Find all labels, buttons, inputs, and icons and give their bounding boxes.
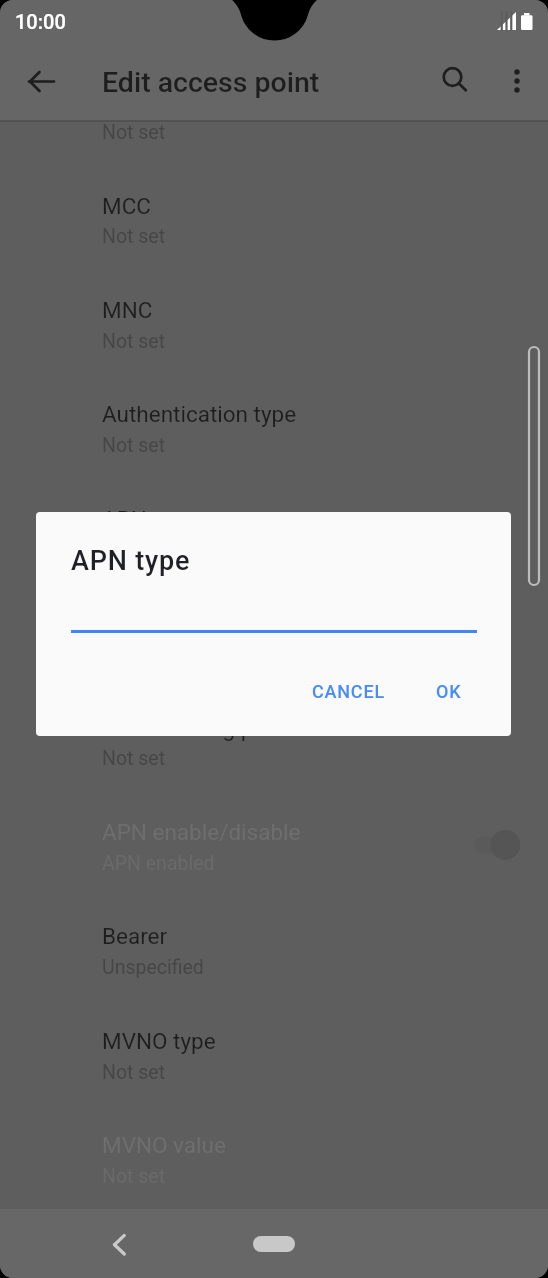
staticText: APN enabled	[102, 852, 215, 875]
button[interactable]: APN enable/disable	[102, 819, 301, 845]
staticText: Unspecified	[102, 956, 204, 979]
button[interactable]: APN protocol	[102, 610, 236, 636]
staticText: OK	[436, 681, 462, 702]
button[interactable]: APN type	[71, 545, 191, 577]
button[interactable]: More options	[493, 57, 541, 105]
staticText: Not set	[102, 330, 166, 353]
button[interactable]: Home	[253, 1236, 295, 1252]
button[interactable]: APN type	[102, 506, 196, 532]
button[interactable]: Back	[95, 1220, 143, 1268]
staticText: Not set	[102, 121, 166, 144]
staticText: CANCEL	[312, 681, 385, 702]
button[interactable]: MNC	[102, 297, 153, 323]
button[interactable]: CANCEL	[296, 669, 401, 714]
staticText: 10:00	[15, 10, 66, 33]
button[interactable]: Authentication type	[102, 401, 297, 427]
button[interactable]: Search	[432, 57, 480, 105]
button[interactable]: OK	[420, 669, 478, 714]
button[interactable]: Bearer	[102, 923, 168, 949]
button[interactable]: Edit access point	[102, 66, 320, 99]
staticText: Not set	[102, 1061, 166, 1084]
button[interactable]: Navigate up	[17, 57, 65, 105]
staticText: Not set	[102, 1165, 166, 1188]
staticText: Not set	[102, 434, 166, 457]
button[interactable]: MVNO value	[102, 1132, 226, 1158]
button[interactable]: MCC	[102, 193, 151, 219]
staticText: Not set	[102, 225, 166, 248]
button[interactable]: APN roaming protocol	[102, 715, 324, 741]
button[interactable]: MVNO type	[102, 1028, 216, 1054]
staticText: Not set	[102, 747, 166, 770]
staticText: Not set	[102, 539, 166, 562]
